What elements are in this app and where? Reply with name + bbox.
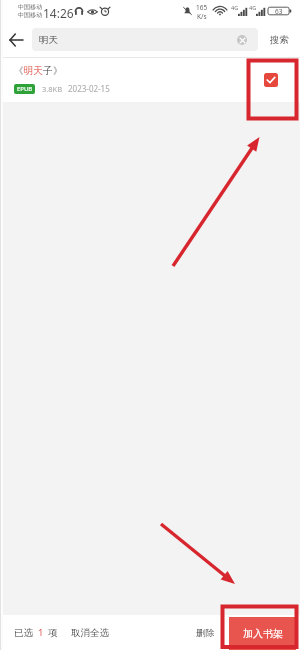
button[interactable]: 搜索 xyxy=(258,22,300,57)
staticText: 搜索 xyxy=(270,34,289,46)
button[interactable]: 《明天子》 xyxy=(0,58,300,102)
staticText: 4G xyxy=(249,4,257,11)
button[interactable]: 取消全选 xyxy=(71,627,109,639)
button[interactable]: 已选 1 项 xyxy=(14,626,58,639)
staticText: 已选 1 项 xyxy=(14,626,58,639)
staticText: K/s xyxy=(197,12,207,21)
staticText: 删除 xyxy=(196,627,215,639)
staticText: 中国移动 xyxy=(18,11,42,19)
staticText: 4G xyxy=(231,4,239,11)
staticText: 明天 xyxy=(39,34,58,46)
button[interactable]: Back xyxy=(0,22,32,57)
staticText: 14:26 xyxy=(43,5,74,21)
staticText: 63 xyxy=(275,7,283,16)
staticText: 中国移动 xyxy=(18,3,42,11)
staticText: 2023-02-15 xyxy=(68,83,110,94)
staticText: 取消全选 xyxy=(71,627,109,639)
staticText: 加入书架 xyxy=(243,627,283,640)
button[interactable]: 删除 xyxy=(196,627,215,639)
staticText: 《明天子》 xyxy=(14,65,63,77)
staticText: EPUB xyxy=(17,85,33,93)
staticText: 165 xyxy=(196,3,208,12)
button[interactable]: 加入书架 xyxy=(229,617,296,650)
button[interactable]: Clear search xyxy=(237,35,247,45)
button[interactable]: 明天 xyxy=(32,28,258,51)
button[interactable]: Selected xyxy=(264,73,278,87)
staticText: 3.8KB xyxy=(42,84,63,94)
